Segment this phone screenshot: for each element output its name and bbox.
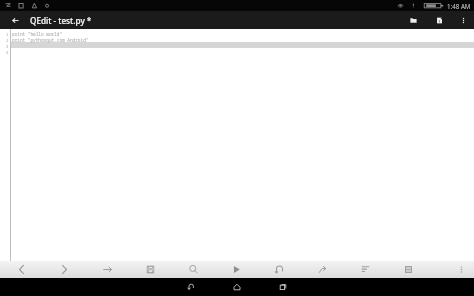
button[interactable]: Save — [129, 261, 172, 278]
button[interactable]: Lines — [387, 261, 430, 278]
staticText: QEdit - test.py * — [30, 15, 92, 26]
button[interactable]: Open folder — [400, 11, 426, 29]
staticText: 1:48 AM — [447, 2, 471, 10]
button[interactable]: Undo — [258, 261, 301, 278]
staticText: 4 — [6, 50, 9, 55]
button[interactable]: 1 — [0, 29, 474, 261]
staticText: 1 — [6, 32, 9, 37]
button[interactable]: Back — [168, 278, 214, 296]
button[interactable]: Run — [215, 261, 258, 278]
button[interactable]: More options — [452, 11, 474, 29]
button[interactable]: Format — [344, 261, 387, 278]
button[interactable]: Indent — [86, 261, 129, 278]
button[interactable]: Redo — [301, 261, 344, 278]
staticText: 3 — [6, 44, 9, 49]
button[interactable]: Save file — [426, 11, 452, 29]
button[interactable]: Back — [0, 11, 30, 29]
button[interactable]: Search — [172, 261, 215, 278]
button[interactable]: More tools — [448, 261, 474, 278]
button[interactable]: Next — [43, 261, 86, 278]
staticText: 2 — [6, 38, 9, 43]
staticText: print "hello world" — [12, 31, 63, 37]
button[interactable]: Recent apps — [260, 278, 306, 296]
button[interactable]: Home — [214, 278, 260, 296]
button[interactable]: Previous — [0, 261, 43, 278]
staticText: print "pythonqut.com Android" — [12, 37, 89, 43]
